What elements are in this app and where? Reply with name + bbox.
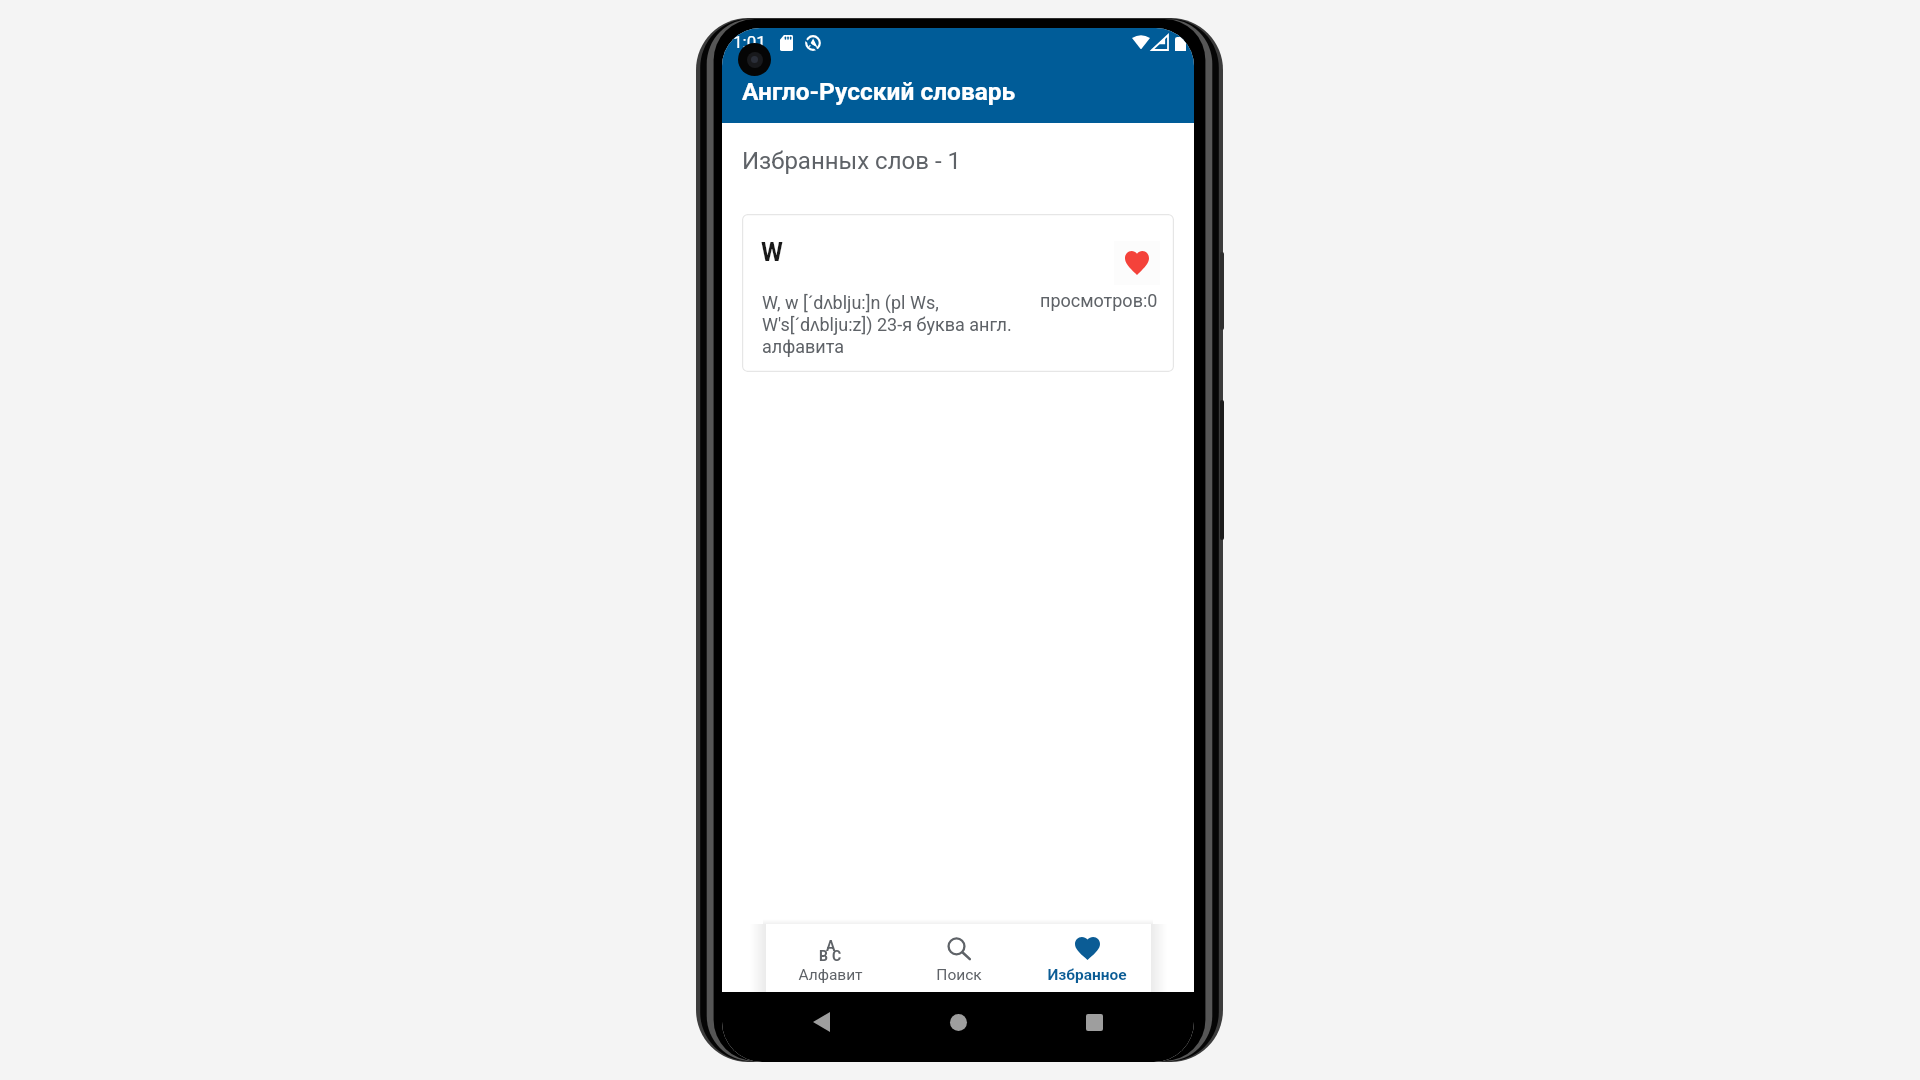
staticText: Алфавит (798, 966, 863, 984)
staticText: Англо-Русский словарь (742, 77, 1016, 106)
button[interactable]: Главный экран (941, 1011, 975, 1033)
staticText: 1:01 (733, 32, 766, 52)
button[interactable]: A (766, 924, 895, 992)
staticText: Избранное (1047, 966, 1127, 984)
button[interactable]: W (742, 214, 1174, 372)
staticText: C (832, 948, 842, 964)
staticText: B (819, 948, 828, 964)
staticText: A (826, 938, 836, 954)
button[interactable]: Назад (804, 1011, 838, 1033)
staticText: Избранных слов - 1 (742, 147, 961, 175)
button[interactable]: Убрать из избранного (1114, 241, 1160, 285)
button[interactable]: Последние приложения (1077, 1011, 1111, 1033)
staticText: W, w [´dʌblju:]n (pl Ws, W's[´dʌblju:z])… (762, 290, 1024, 357)
button[interactable]: Поиск (895, 924, 1023, 992)
staticText: просмотров:0 (1040, 290, 1158, 311)
staticText: W (761, 238, 783, 267)
staticText: Поиск (936, 966, 982, 984)
button[interactable]: Избранное (1023, 924, 1151, 992)
